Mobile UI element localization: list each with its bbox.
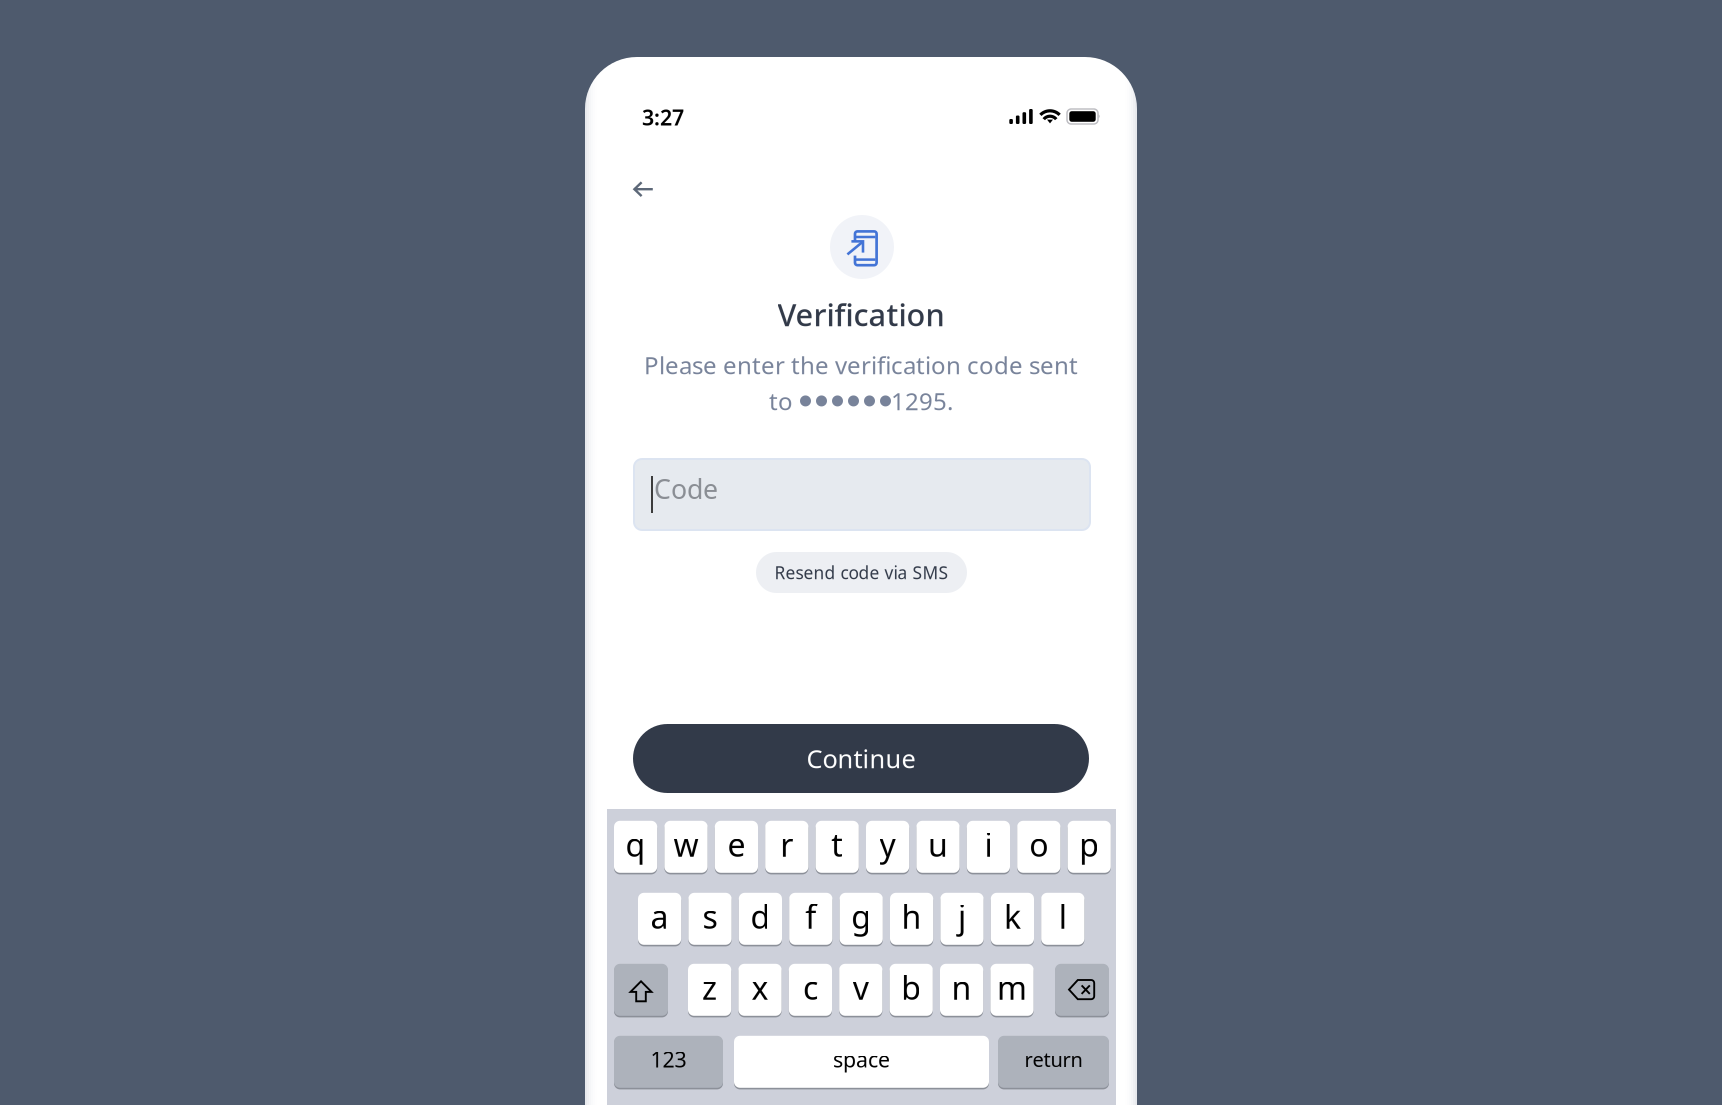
button[interactable]: z xyxy=(688,963,731,1017)
button[interactable]: 123 xyxy=(614,1035,723,1089)
button[interactable]: v xyxy=(839,963,882,1017)
staticText: Please enter the verification code sent xyxy=(644,349,1078,381)
staticText: k xyxy=(1004,895,1021,938)
button[interactable]: Back xyxy=(622,170,665,209)
staticText: to xyxy=(769,385,793,417)
staticText: v xyxy=(853,966,869,1009)
button[interactable]: d xyxy=(739,892,782,946)
button[interactable]: t xyxy=(816,820,859,874)
button[interactable]: Code xyxy=(634,459,1090,530)
staticText: p xyxy=(1079,823,1099,866)
staticText: c xyxy=(803,966,818,1009)
staticText: 123 xyxy=(650,1045,686,1073)
button[interactable]: s xyxy=(688,892,732,946)
staticText: 1295. xyxy=(891,385,953,417)
staticText: e xyxy=(727,823,745,866)
button[interactable]: g xyxy=(840,892,883,946)
button[interactable]: m xyxy=(990,963,1034,1017)
staticText: s xyxy=(702,895,717,938)
staticText: d xyxy=(750,895,770,938)
button[interactable]: b xyxy=(890,963,933,1017)
staticText: x xyxy=(751,966,768,1009)
staticText: r xyxy=(780,823,793,866)
button[interactable]: y xyxy=(866,820,909,874)
button[interactable]: c xyxy=(789,963,832,1017)
staticText: m xyxy=(997,966,1027,1009)
staticText: t xyxy=(831,823,843,866)
button[interactable]: a xyxy=(638,892,681,946)
staticText: j xyxy=(958,895,966,938)
staticText: h xyxy=(902,895,922,938)
button[interactable]: r xyxy=(765,820,808,874)
staticText: Continue xyxy=(806,742,915,775)
button[interactable]: f xyxy=(789,892,832,946)
staticText: z xyxy=(702,966,717,1009)
button[interactable]: Continue xyxy=(633,724,1089,793)
button[interactable]: k xyxy=(991,892,1034,946)
staticText: return xyxy=(1024,1046,1082,1073)
button[interactable]: Shift xyxy=(614,963,668,1017)
button[interactable]: w xyxy=(664,820,708,874)
button[interactable]: x xyxy=(738,963,782,1017)
button[interactable]: e xyxy=(715,820,758,874)
button[interactable]: Delete xyxy=(1055,963,1109,1017)
staticText: i xyxy=(984,823,992,866)
staticText: 3:27 xyxy=(642,103,684,131)
staticText: a xyxy=(651,895,669,938)
staticText: Code xyxy=(654,471,718,506)
staticText: y xyxy=(880,823,896,866)
staticText: n xyxy=(952,966,972,1009)
button[interactable]: h xyxy=(890,892,933,946)
button[interactable]: u xyxy=(916,820,960,874)
button[interactable]: return xyxy=(998,1035,1109,1089)
staticText: Resend code via SMS xyxy=(774,561,948,584)
staticText: space xyxy=(833,1045,890,1073)
button[interactable]: Resend code via SMS xyxy=(756,552,967,593)
button[interactable]: l xyxy=(1041,892,1084,946)
button[interactable]: j xyxy=(940,892,984,946)
staticText: w xyxy=(673,823,698,866)
staticText: u xyxy=(928,823,948,866)
button[interactable]: p xyxy=(1068,820,1111,874)
staticText: b xyxy=(901,966,921,1009)
staticText: l xyxy=(1059,895,1067,938)
button[interactable]: space xyxy=(734,1035,989,1089)
button[interactable]: o xyxy=(1017,820,1060,874)
staticText: q xyxy=(626,823,646,866)
button[interactable]: i xyxy=(967,820,1010,874)
staticText: f xyxy=(805,895,816,938)
staticText: Verification xyxy=(777,294,944,335)
button[interactable]: q xyxy=(614,820,657,874)
staticText: g xyxy=(851,895,871,938)
staticText: o xyxy=(1029,823,1048,866)
button[interactable]: n xyxy=(940,963,983,1017)
